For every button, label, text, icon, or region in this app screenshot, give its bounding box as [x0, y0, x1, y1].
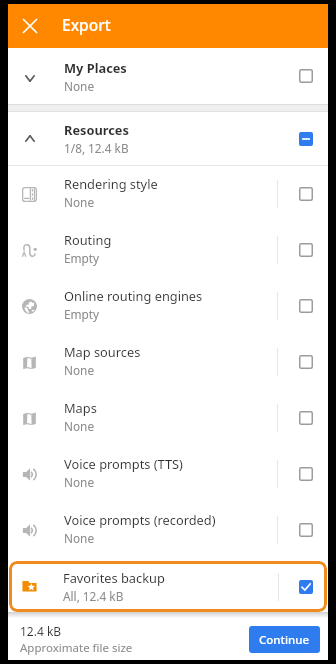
button[interactable]: Select Rendering style: [278, 166, 328, 222]
button[interactable]: Favorites backup: [9, 561, 327, 612]
button[interactable]: Select Routing: [278, 222, 328, 278]
button[interactable]: Select Voice prompts (recorded): [278, 502, 328, 558]
staticText: None: [64, 78, 95, 94]
button[interactable]: My Places: [8, 48, 328, 104]
button[interactable]: Select Resources: [283, 112, 328, 165]
button[interactable]: Voice prompts (recorded): [8, 502, 328, 558]
button[interactable]: Select Map sources: [278, 334, 328, 390]
staticText: Favorites backup: [63, 569, 165, 586]
button[interactable]: Online routing engines: [8, 278, 328, 334]
staticText: None: [64, 194, 95, 210]
staticText: None: [64, 530, 95, 546]
button[interactable]: Deselect Favorites backup: [279, 561, 327, 612]
button[interactable]: Rendering style: [8, 166, 328, 222]
button[interactable]: Select Voice prompts (TTS): [278, 446, 328, 502]
button[interactable]: Continue: [249, 626, 320, 653]
staticText: Export: [62, 14, 111, 35]
staticText: Rendering style: [64, 175, 158, 192]
staticText: Voice prompts (TTS): [64, 455, 183, 472]
staticText: Maps: [64, 399, 97, 416]
staticText: My Places: [64, 59, 127, 76]
staticText: None: [64, 474, 95, 490]
button[interactable]: Resources: [8, 112, 328, 165]
staticText: All, 12.4 kB: [63, 588, 124, 604]
staticText: Continue: [259, 632, 310, 648]
staticText: Voice prompts (recorded): [64, 511, 216, 528]
staticText: Resources: [64, 121, 129, 138]
staticText: None: [64, 418, 95, 434]
button[interactable]: Map sources: [8, 334, 328, 390]
button[interactable]: Voice prompts (TTS): [8, 446, 328, 502]
staticText: Empty: [64, 250, 100, 266]
button[interactable]: Maps: [8, 390, 328, 446]
button[interactable]: Select Maps: [278, 390, 328, 446]
staticText: None: [64, 362, 95, 378]
button[interactable]: Routing: [8, 222, 328, 278]
staticText: Routing: [64, 231, 112, 248]
button[interactable]: Select My Places: [283, 48, 328, 104]
staticText: Empty: [64, 306, 100, 322]
staticText: 1/8, 12.4 kB: [64, 140, 129, 156]
staticText: Map sources: [64, 343, 141, 360]
button[interactable]: Select Online routing engines: [278, 278, 328, 334]
button[interactable]: Close: [8, 4, 52, 48]
staticText: 12.4 kB: [20, 623, 62, 639]
staticText: Online routing engines: [64, 287, 203, 304]
staticText: Approximate file size: [20, 640, 133, 656]
